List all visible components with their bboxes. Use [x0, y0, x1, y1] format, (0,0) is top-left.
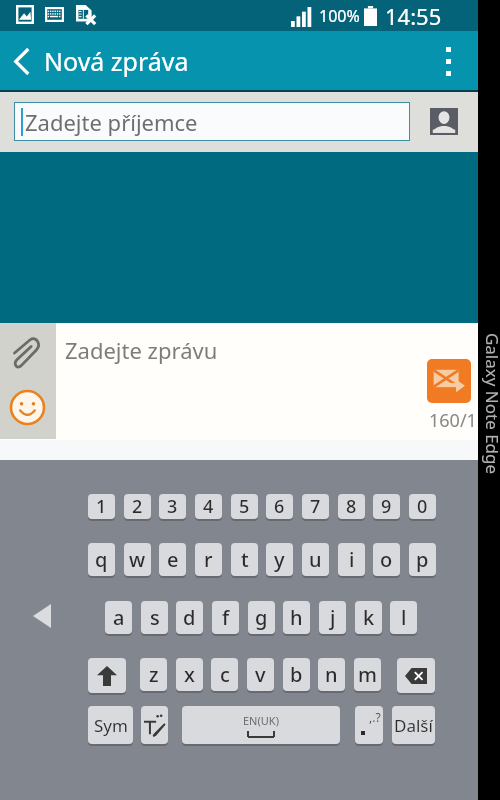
button[interactable]: Backspace — [397, 658, 435, 693]
button[interactable]: Send message — [427, 359, 471, 403]
button[interactable]: 9 — [373, 494, 400, 519]
staticText: k — [363, 604, 375, 631]
button[interactable]: Add contact — [424, 101, 464, 141]
staticText: 14:55 — [385, 1, 442, 31]
button[interactable]: 5 — [231, 494, 258, 519]
button[interactable]: x — [176, 658, 203, 691]
staticText: 1 — [96, 494, 107, 519]
staticText: ,.? — [369, 709, 381, 725]
staticText: Zadejte příjemce — [25, 107, 198, 137]
button[interactable]: d — [176, 601, 203, 634]
staticText: Další — [394, 714, 433, 737]
staticText: 0 — [417, 494, 428, 519]
button[interactable]: Handwriting — [141, 706, 168, 744]
staticText: y — [274, 546, 285, 573]
button[interactable]: e — [159, 543, 186, 576]
staticText: Nová zpráva — [44, 44, 189, 78]
button[interactable]: Attach — [0, 323, 56, 381]
button[interactable]: c — [211, 658, 238, 691]
button[interactable]: t — [231, 543, 258, 576]
staticText: c — [220, 661, 230, 688]
button[interactable]: v — [247, 658, 274, 691]
staticText: j — [330, 604, 336, 631]
button[interactable]: q — [88, 543, 115, 576]
button[interactable]: w — [124, 543, 151, 576]
button[interactable]: s — [141, 601, 168, 634]
button[interactable]: k — [355, 601, 382, 634]
staticText: z — [149, 661, 159, 688]
button[interactable]: Back — [26, 600, 58, 632]
staticText: 7 — [310, 494, 321, 519]
staticText: n — [325, 661, 338, 688]
button[interactable]: a — [105, 601, 132, 634]
staticText: p — [416, 546, 429, 573]
button[interactable]: 2 — [124, 494, 151, 519]
staticText: 4 — [203, 494, 214, 519]
staticText: r — [204, 546, 213, 573]
staticText: u — [309, 546, 322, 573]
staticText: f — [222, 604, 230, 631]
button[interactable]: Emoji — [0, 381, 56, 439]
button[interactable]: i — [338, 543, 365, 576]
staticText: Sym — [94, 714, 128, 737]
button[interactable]: l — [390, 601, 417, 634]
button[interactable]: Space — [182, 706, 340, 744]
button[interactable]: Period — [355, 706, 383, 744]
staticText: h — [290, 604, 303, 631]
staticText: e — [167, 546, 179, 573]
staticText: 9 — [381, 494, 392, 519]
button[interactable]: o — [373, 543, 400, 576]
staticText: 5 — [239, 494, 250, 519]
staticText: Zadejte zprávu — [65, 335, 218, 365]
button[interactable]: u — [302, 543, 329, 576]
button[interactable]: Back — [0, 39, 44, 83]
staticText: 160/1 — [429, 408, 477, 433]
staticText: o — [380, 546, 393, 573]
button[interactable]: Shift — [88, 658, 126, 693]
staticText: l — [401, 604, 407, 631]
button[interactable]: p — [409, 543, 436, 576]
button[interactable]: b — [283, 658, 310, 691]
button[interactable]: 6 — [266, 494, 293, 519]
button[interactable]: y — [266, 543, 293, 576]
button[interactable]: m — [354, 658, 381, 691]
staticText: v — [255, 661, 266, 688]
button[interactable]: 1 — [88, 494, 115, 519]
button[interactable]: h — [283, 601, 310, 634]
button[interactable]: n — [318, 658, 345, 691]
button[interactable]: j — [319, 601, 346, 634]
button[interactable]: Next — [392, 706, 435, 744]
button[interactable]: Symbols — [88, 706, 133, 744]
staticText: 100% — [319, 5, 360, 27]
staticText: EN(UK) — [243, 713, 279, 728]
staticText: i — [349, 546, 355, 573]
staticText: 8 — [346, 494, 357, 519]
button[interactable]: 4 — [195, 494, 222, 519]
button[interactable]: f — [212, 601, 239, 634]
staticText: 3 — [167, 494, 178, 519]
button[interactable]: 8 — [338, 494, 365, 519]
button[interactable]: More options — [428, 41, 468, 81]
staticText: Galaxy Note Edge — [480, 328, 500, 478]
staticText: 2 — [132, 494, 143, 519]
staticText: g — [255, 604, 268, 631]
button[interactable]: 3 — [159, 494, 186, 519]
staticText: t — [241, 546, 249, 573]
button[interactable]: g — [248, 601, 275, 634]
staticText: w — [129, 546, 146, 573]
button[interactable]: r — [195, 543, 222, 576]
staticText: q — [95, 546, 108, 573]
button[interactable]: z — [140, 658, 167, 691]
staticText: x — [184, 661, 195, 688]
staticText: s — [150, 604, 160, 631]
staticText: a — [113, 604, 125, 631]
staticText: 6 — [274, 494, 285, 519]
staticText: d — [183, 604, 196, 631]
button[interactable]: 0 — [409, 494, 436, 519]
staticText: b — [290, 661, 303, 688]
button[interactable]: 7 — [302, 494, 329, 519]
button[interactable]: Zadejte příjemce — [14, 102, 410, 141]
staticText: m — [358, 661, 377, 688]
